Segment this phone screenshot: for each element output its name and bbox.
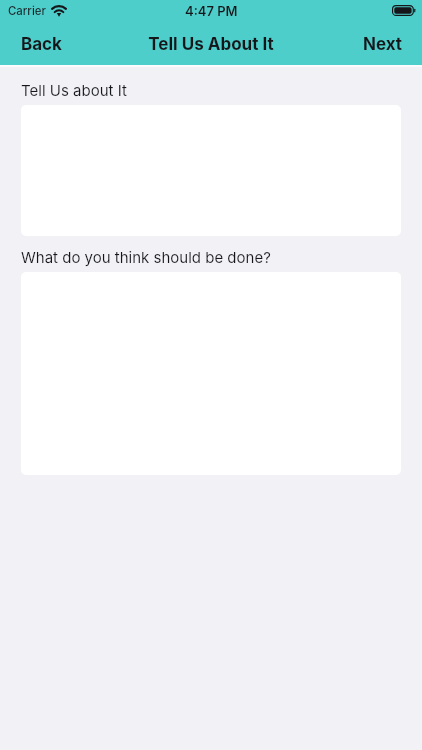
staticText: Tell Us About It <box>148 34 274 55</box>
staticText: Back <box>21 34 62 55</box>
other: Battery full <box>392 5 417 16</box>
button[interactable]: Back <box>0 26 78 62</box>
staticText: Next <box>363 34 403 55</box>
staticText: 4:47 PM <box>185 3 238 19</box>
staticText: Tell Us about It <box>21 81 127 99</box>
staticText: What do you think should be done? <box>21 248 271 266</box>
other: Wi-Fi signal <box>51 5 67 16</box>
staticText: Carrier <box>8 4 46 18</box>
button[interactable]: Next <box>347 26 422 62</box>
